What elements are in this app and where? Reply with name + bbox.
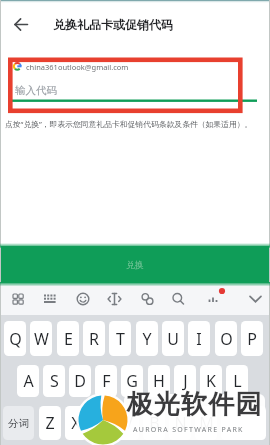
button[interactable]: B bbox=[143, 406, 165, 440]
button[interactable] bbox=[0, 8, 270, 42]
staticText: I bbox=[196, 328, 202, 350]
staticText: Z bbox=[45, 412, 55, 434]
button[interactable]: Q bbox=[4, 321, 26, 356]
staticText: C bbox=[97, 412, 108, 434]
button[interactable]: C bbox=[91, 406, 113, 440]
staticText: L bbox=[233, 370, 242, 392]
button[interactable]: P bbox=[241, 321, 263, 356]
button[interactable]: W bbox=[30, 321, 52, 356]
staticText: Q bbox=[9, 328, 22, 350]
staticText: AURORA SOFTWARE PARK bbox=[133, 425, 244, 435]
staticText: 分词 bbox=[8, 417, 29, 430]
staticText: 兑换 bbox=[126, 259, 144, 270]
staticText: X bbox=[71, 412, 81, 434]
staticText: Y bbox=[142, 328, 152, 350]
staticText: A bbox=[23, 370, 34, 392]
staticText: B bbox=[149, 412, 160, 434]
staticText: G bbox=[126, 370, 138, 392]
staticText: china361outlook@gmail.com bbox=[26, 62, 129, 72]
button[interactable]: R bbox=[83, 321, 105, 356]
staticText: O bbox=[220, 328, 233, 350]
staticText: M bbox=[199, 412, 214, 434]
button[interactable]: O bbox=[215, 321, 237, 356]
staticText: S bbox=[50, 370, 59, 392]
button[interactable] bbox=[221, 406, 266, 440]
button[interactable]: E bbox=[57, 321, 79, 356]
staticText: N bbox=[174, 412, 187, 434]
button[interactable]: G bbox=[121, 365, 143, 397]
button[interactable]: S bbox=[43, 365, 65, 397]
staticText: 输入代码 bbox=[15, 84, 57, 97]
button[interactable]: T bbox=[109, 321, 131, 356]
button[interactable]: 兑换 bbox=[0, 246, 270, 283]
button[interactable]: F bbox=[95, 365, 117, 397]
button[interactable]: 分词 bbox=[3, 406, 34, 440]
button[interactable]: Y bbox=[136, 321, 158, 356]
staticText: K bbox=[206, 370, 216, 392]
staticText: T bbox=[116, 328, 125, 350]
button[interactable]: I bbox=[188, 321, 210, 356]
button[interactable]: X bbox=[65, 406, 87, 440]
staticText: H bbox=[153, 370, 165, 392]
button[interactable]: K bbox=[200, 365, 222, 397]
staticText: W bbox=[34, 328, 49, 350]
staticText: V bbox=[123, 412, 133, 434]
button[interactable]: H bbox=[148, 365, 170, 397]
staticText: P bbox=[247, 328, 257, 350]
staticText: E bbox=[64, 328, 73, 350]
staticText: F bbox=[102, 370, 111, 392]
button[interactable]: J bbox=[174, 365, 196, 397]
staticText: 点按“兑换”，即表示您同意礼品卡和促销代码条款及条件（如果适用）。 bbox=[5, 119, 253, 130]
staticText: J bbox=[183, 370, 188, 392]
staticText: R bbox=[89, 328, 99, 350]
button[interactable]: D bbox=[69, 365, 91, 397]
staticText: U bbox=[167, 328, 179, 350]
button[interactable]: M bbox=[195, 406, 217, 440]
button[interactable]: U bbox=[162, 321, 184, 356]
button[interactable]: V bbox=[117, 406, 139, 440]
staticText: 极光软件园 bbox=[126, 388, 262, 421]
staticText: D bbox=[74, 370, 86, 392]
button[interactable]: Z bbox=[39, 406, 61, 440]
button[interactable]: L bbox=[226, 365, 248, 397]
staticText: 兑换礼品卡或促销代码 bbox=[53, 17, 173, 32]
button[interactable]: N bbox=[169, 406, 191, 440]
button[interactable]: A bbox=[17, 365, 39, 397]
